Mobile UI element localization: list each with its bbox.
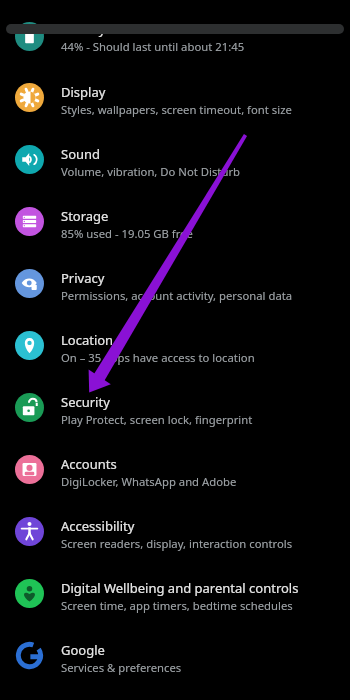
button[interactable]: Google bbox=[0, 624, 350, 686]
staticText: Screen time, app timers, bedtime schedul… bbox=[61, 598, 293, 613]
staticText: Services & preferences bbox=[61, 660, 182, 675]
staticText: Volume, vibration, Do Not Disturb bbox=[61, 164, 241, 179]
button[interactable]: Display bbox=[0, 66, 350, 128]
button[interactable]: Digital Wellbeing and parental controls bbox=[0, 562, 350, 624]
staticText: Styles, wallpapers, screen timeout, font… bbox=[61, 102, 292, 117]
staticText: On – 35 apps have access to location bbox=[61, 350, 255, 365]
button[interactable]: Sound bbox=[0, 128, 350, 190]
staticText: Digital Wellbeing and parental controls bbox=[61, 579, 299, 597]
staticText: Privacy bbox=[61, 269, 105, 287]
button[interactable]: Security bbox=[0, 376, 350, 438]
button[interactable]: Accessibility bbox=[0, 500, 350, 562]
staticText: Screen readers, display, interaction con… bbox=[61, 536, 293, 551]
staticText: Accessibility bbox=[61, 517, 135, 535]
staticText: Location bbox=[61, 331, 114, 349]
staticText: DigiLocker, WhatsApp and Adobe bbox=[61, 474, 237, 489]
button[interactable]: Location bbox=[0, 314, 350, 376]
staticText: Play Protect, screen lock, fingerprint bbox=[61, 412, 253, 427]
staticText: Accounts bbox=[61, 455, 117, 473]
staticText: Display bbox=[61, 83, 106, 101]
staticText: Battery bbox=[61, 20, 106, 38]
staticText: Security bbox=[61, 393, 110, 411]
staticText: 44% - Should last until about 21:45 bbox=[61, 39, 245, 54]
button[interactable]: Storage bbox=[0, 190, 350, 252]
staticText: Storage bbox=[61, 207, 109, 225]
staticText: Sound bbox=[61, 145, 101, 163]
staticText: Google bbox=[61, 641, 105, 659]
button[interactable]: Accounts bbox=[0, 438, 350, 500]
staticText: 85% used - 19.05 GB free bbox=[61, 226, 193, 241]
button[interactable]: Privacy bbox=[0, 252, 350, 314]
button[interactable]: Battery bbox=[0, 7, 350, 66]
staticText: Permissions, account activity, personal … bbox=[61, 288, 293, 303]
